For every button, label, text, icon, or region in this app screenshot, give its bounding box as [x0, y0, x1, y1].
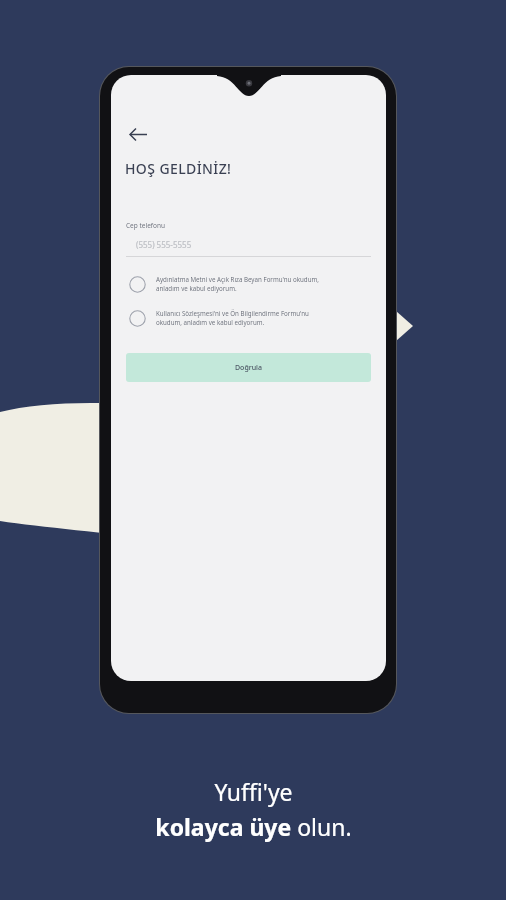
button[interactable]: Kullanıcı Sözleşmesi'ni ve Ön Bilgilendi… [123, 307, 374, 329]
button[interactable]: Doğrula [126, 353, 371, 382]
staticText: (555) 555-5555 [136, 239, 192, 250]
staticText: kolayca üye olun. [155, 811, 352, 842]
button[interactable]: Aydınlatma Metni ve Açık Rıza Beyan Form… [123, 273, 374, 295]
staticText: Doğrula [235, 363, 262, 373]
staticText: Cep telefonu [126, 221, 166, 230]
staticText: Kullanıcı Sözleşmesi'ni ve Ön Bilgilendi… [156, 309, 309, 327]
button[interactable]: Back [123, 119, 153, 149]
button[interactable]: (555) 555-5555 [126, 239, 371, 250]
staticText: Yuffi'ye [214, 776, 293, 807]
staticText: Aydınlatma Metni ve Açık Rıza Beyan Form… [156, 275, 319, 293]
staticText: HOŞ GELDİNİZ! [125, 159, 232, 178]
